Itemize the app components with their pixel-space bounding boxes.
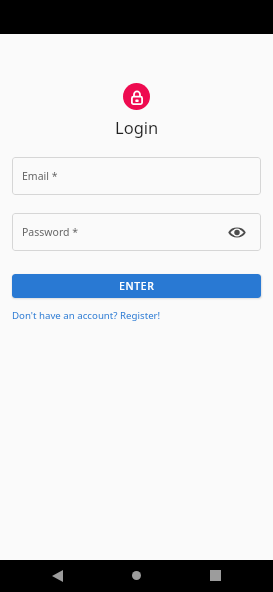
staticText: Email * [22, 169, 58, 183]
button[interactable]: Email * [12, 157, 261, 195]
staticText: Login [115, 116, 159, 138]
button[interactable]: Home [121, 560, 152, 591]
button[interactable]: Password * [12, 213, 261, 251]
button[interactable]: Recent apps [200, 560, 231, 591]
staticText: Don't have an account? Register! [12, 309, 161, 322]
button[interactable]: ENTER [12, 274, 261, 298]
staticText: Password * [22, 225, 79, 239]
button[interactable]: Back [42, 560, 73, 591]
button[interactable]: Don't have an account? Register! [12, 309, 161, 322]
staticText: ENTER [119, 279, 155, 293]
button[interactable]: Show password [225, 214, 249, 250]
